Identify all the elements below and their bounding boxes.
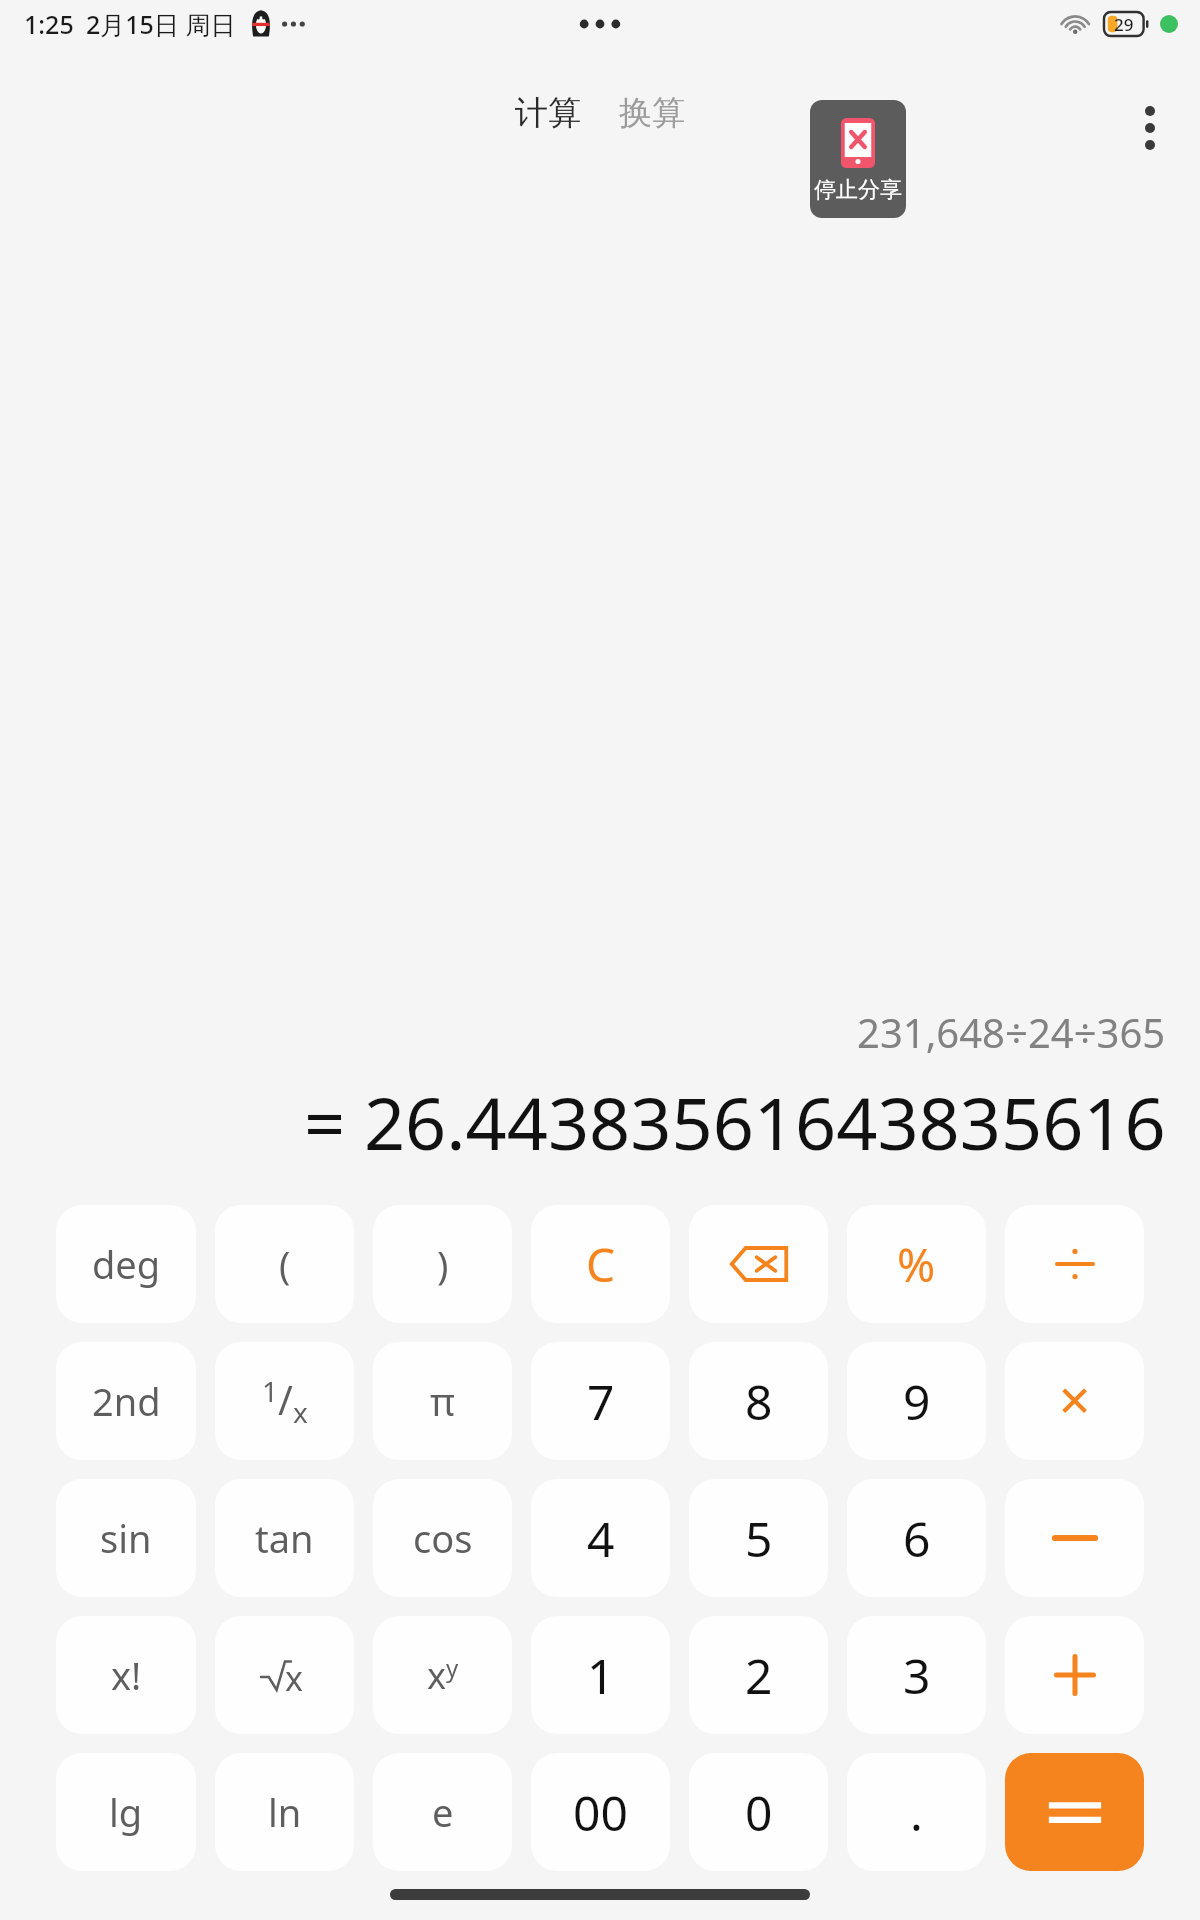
staticText: e (432, 1786, 454, 1838)
button[interactable]: 7 (531, 1342, 670, 1460)
button[interactable]: 9 (847, 1342, 986, 1460)
button[interactable]: 换算 (613, 88, 691, 138)
staticText: . (910, 1780, 923, 1845)
button[interactable]: One over x (215, 1342, 354, 1460)
button[interactable]: 5 (689, 1479, 828, 1597)
button[interactable]: cos (373, 1479, 512, 1597)
staticText: deg (92, 1238, 161, 1290)
button[interactable]: ln (215, 1753, 354, 1871)
button[interactable]: Factorial (56, 1616, 196, 1734)
button[interactable]: 0 (689, 1753, 828, 1871)
staticText: 换算 (619, 92, 685, 134)
staticText: 231,648÷24÷365 (857, 1005, 1166, 1059)
button[interactable]: lg (56, 1753, 196, 1871)
staticText: lg (109, 1786, 143, 1838)
button[interactable]: 停止分享 (810, 100, 906, 218)
staticText: tan (255, 1512, 314, 1564)
button[interactable]: sin (56, 1479, 196, 1597)
button[interactable]: 00 (531, 1753, 670, 1871)
staticText: 8 (745, 1369, 773, 1434)
button[interactable]: ( (215, 1205, 354, 1323)
staticText: 4 (587, 1506, 615, 1571)
button[interactable]: π (373, 1342, 512, 1460)
staticText: 2nd (92, 1375, 161, 1427)
button[interactable]: 4 (531, 1479, 670, 1597)
staticText: ✕ (1057, 1377, 1093, 1426)
staticText: 6 (903, 1506, 931, 1571)
staticText: 1:25 (24, 7, 74, 41)
button[interactable]: 计算 (509, 88, 587, 138)
button[interactable]: ) (373, 1205, 512, 1323)
button[interactable]: 1 (531, 1616, 670, 1734)
staticText: sin (100, 1512, 152, 1564)
button[interactable]: 6 (847, 1479, 986, 1597)
staticText: π (430, 1375, 455, 1427)
staticText: x (285, 1655, 303, 1701)
staticText: 00 (573, 1780, 628, 1845)
button[interactable]: tan (215, 1479, 354, 1597)
button[interactable]: e (373, 1753, 512, 1871)
staticText: cos (413, 1512, 473, 1564)
button[interactable]: Multiply (1005, 1342, 1144, 1460)
staticText: ln (268, 1786, 302, 1838)
staticText: 计算 (515, 92, 581, 134)
staticText: 停止分享 (814, 176, 902, 204)
staticText: 5 (745, 1506, 773, 1571)
staticText: 2 (745, 1643, 773, 1708)
staticText: = 26.44383561643835616 (304, 1073, 1166, 1171)
button[interactable]: 2 (689, 1616, 828, 1734)
button[interactable]: Equals (1005, 1753, 1144, 1871)
staticText: xy (427, 1651, 459, 1700)
button[interactable]: Divide (1005, 1205, 1144, 1323)
staticText: x! (111, 1649, 142, 1701)
button[interactable]: deg (56, 1205, 196, 1323)
staticText: 29 (1114, 13, 1134, 36)
button[interactable]: . (847, 1753, 986, 1871)
staticText: 1 (587, 1643, 615, 1708)
staticText: 3 (903, 1643, 931, 1708)
button[interactable]: % (847, 1205, 986, 1323)
button[interactable]: Square root (215, 1616, 354, 1734)
button[interactable]: x to the power y (373, 1616, 512, 1734)
button[interactable]: More options (1118, 96, 1182, 160)
staticText: 2月15日 周日 (86, 7, 236, 41)
staticText: ) (437, 1238, 449, 1290)
staticText: ( (279, 1238, 291, 1290)
button[interactable]: 2nd (56, 1342, 196, 1460)
staticText: 7 (587, 1369, 615, 1434)
button[interactable]: Plus (1005, 1616, 1144, 1734)
staticText: 0 (745, 1780, 773, 1845)
staticText: % (897, 1233, 936, 1296)
button[interactable]: Backspace (689, 1205, 828, 1323)
button[interactable]: 8 (689, 1342, 828, 1460)
staticText: 9 (903, 1369, 931, 1434)
button[interactable]: 3 (847, 1616, 986, 1734)
staticText: C (586, 1233, 616, 1296)
button[interactable]: C (531, 1205, 670, 1323)
button[interactable]: Minus (1005, 1479, 1144, 1597)
staticText: 1/x (262, 1372, 308, 1431)
